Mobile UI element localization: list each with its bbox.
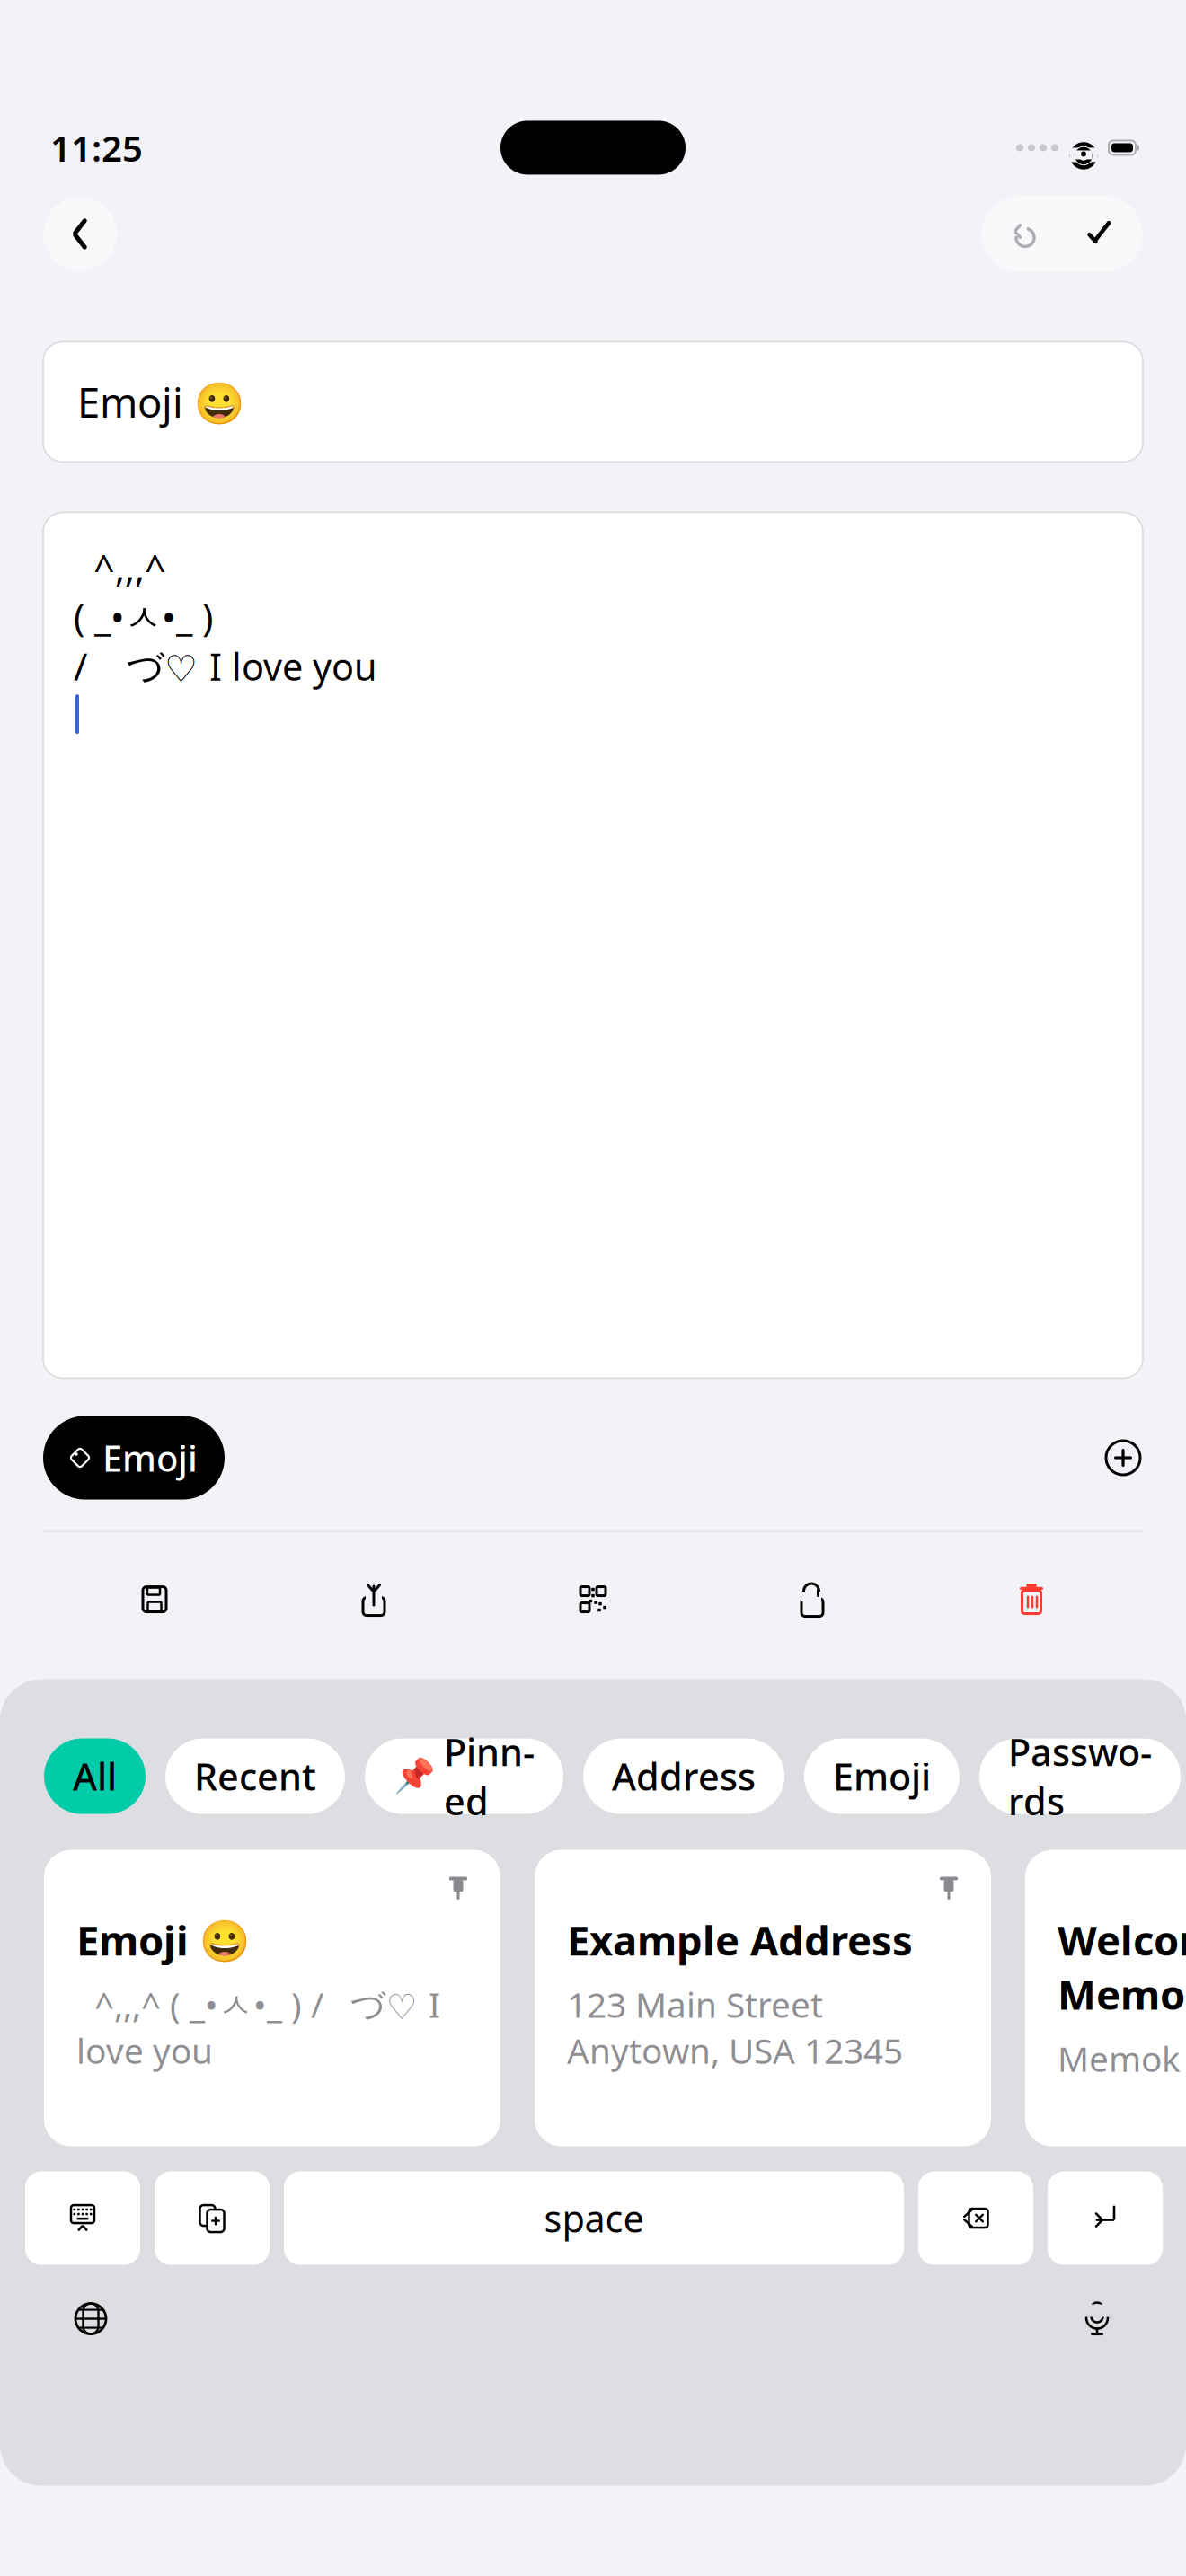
button[interactable]: Return	[1048, 2171, 1163, 2265]
button[interactable]: Add tag	[1103, 1438, 1143, 1478]
staticText: ^,,,^	[74, 543, 166, 592]
button[interactable]: Recent	[165, 1739, 345, 1814]
button[interactable]: Emoji	[43, 1416, 225, 1500]
staticText: ( _•ㅅ•_ )	[74, 592, 213, 641]
staticText: Emoji	[102, 1434, 198, 1482]
staticText: 11:25	[50, 124, 143, 172]
staticText: / づ♡ I love you	[74, 641, 377, 691]
staticText: Pinned	[444, 1727, 535, 1826]
button[interactable]: Save	[45, 1585, 264, 1614]
button[interactable]: Passwords	[979, 1739, 1181, 1814]
button[interactable]: Share	[264, 1584, 483, 1615]
staticText: All	[73, 1752, 117, 1801]
button[interactable]: Space	[284, 2171, 904, 2265]
button[interactable]: 📌	[365, 1739, 563, 1814]
staticText: Welcome to Memok	[1058, 1913, 1186, 2021]
staticText: 📌	[394, 1757, 435, 1795]
staticText: Emoji	[833, 1752, 931, 1801]
button[interactable]: QR code	[483, 1586, 703, 1613]
staticText: Passwords	[1008, 1727, 1152, 1826]
staticText: space	[544, 2193, 644, 2243]
button[interactable]: Undo	[987, 196, 1062, 272]
staticText: 123 Main Street Anytown, USA 12345	[567, 1981, 903, 2073]
button[interactable]: All	[44, 1739, 146, 1814]
button[interactable]: New note	[155, 2171, 270, 2265]
staticText: Emoji 😀	[77, 375, 244, 429]
button[interactable]: Emoji	[804, 1739, 960, 1814]
button[interactable]: Delete	[922, 1583, 1141, 1615]
button[interactable]: Delete	[918, 2171, 1033, 2265]
button[interactable]: Address	[583, 1739, 784, 1814]
button[interactable]: Switch keyboard	[48, 2276, 134, 2362]
button[interactable]: Lock note	[703, 1584, 922, 1615]
button[interactable]: Dictate	[1054, 2276, 1140, 2362]
staticText: ^,,,^ ( _•ㅅ•_ ) / づ♡ I love you	[76, 1981, 440, 2073]
button[interactable]: Done	[1062, 196, 1137, 272]
button[interactable]: Welcome to Memok	[1025, 1850, 1186, 2146]
staticText: Example Address	[567, 1913, 913, 1967]
staticText: Recent	[194, 1752, 316, 1801]
staticText: Memok keeps secure,	[1058, 2035, 1186, 2081]
button[interactable]: Hide keyboard	[25, 2171, 140, 2265]
button[interactable]: Example Address	[535, 1850, 991, 2146]
staticText: Emoji 😀	[76, 1913, 250, 1967]
button[interactable]: Back	[43, 197, 117, 271]
staticText: Address	[612, 1752, 756, 1801]
button[interactable]: Emoji 😀	[44, 1850, 500, 2146]
